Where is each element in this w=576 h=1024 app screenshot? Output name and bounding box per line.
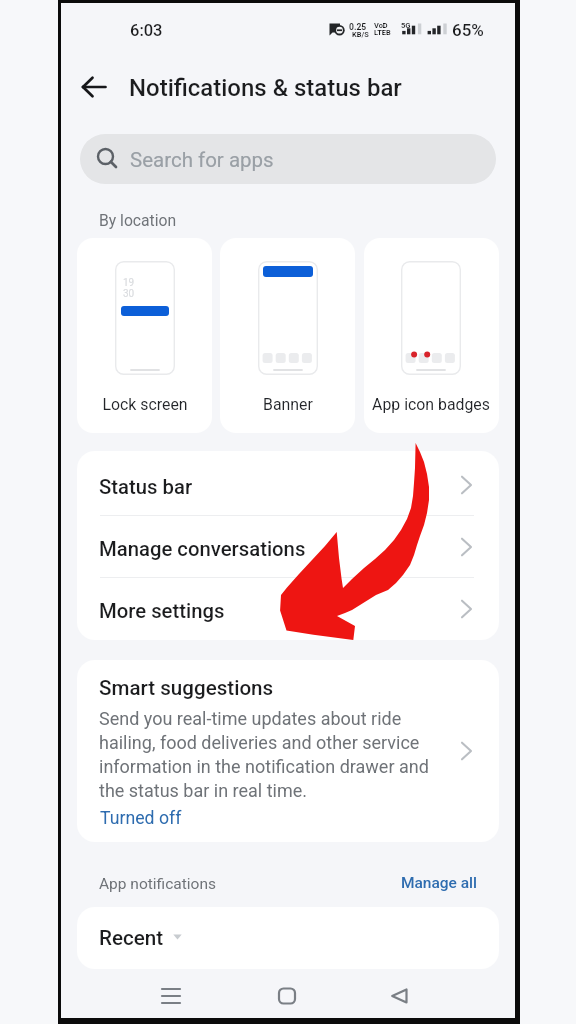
button[interactable] (77, 451, 499, 516)
staticText: By location (99, 211, 177, 229)
button[interactable]: Recent apps (145, 970, 197, 1022)
button[interactable]: Back (374, 970, 426, 1022)
button[interactable] (364, 238, 499, 433)
staticText: 65% (452, 20, 484, 40)
staticText: Turned off (100, 808, 182, 829)
staticText: Banner (263, 395, 313, 414)
button[interactable]: Home (261, 970, 313, 1022)
button[interactable] (77, 516, 499, 579)
button[interactable] (77, 238, 212, 433)
button[interactable]: Back (72, 65, 116, 109)
staticText: Recent (99, 926, 164, 950)
staticText: More settings (99, 599, 225, 623)
staticText: 6:03 (130, 21, 163, 40)
button[interactable] (395, 866, 481, 900)
staticText: 30 (123, 288, 135, 300)
staticText: LTEB (374, 28, 391, 37)
staticText: 5G (401, 21, 411, 30)
button[interactable] (80, 134, 496, 184)
staticText: 19 (123, 277, 135, 289)
staticText: Manage conversations (99, 537, 306, 561)
staticText: Manage all (400, 874, 477, 892)
staticText: Status bar (99, 475, 193, 499)
button[interactable] (77, 578, 499, 640)
staticText: App icon badges (372, 395, 490, 414)
staticText: hailing, food deliveries and other servi… (99, 732, 420, 753)
staticText: Notifications & status bar (129, 74, 402, 102)
staticText: 0.25 (349, 22, 367, 32)
staticText: Search for apps (130, 148, 274, 172)
staticText: information in the notification drawer a… (99, 756, 429, 777)
staticText: App notifications (99, 875, 216, 893)
staticText: the status bar in real time. (99, 780, 308, 801)
staticText: Send you real-time updates about ride (99, 708, 402, 729)
button[interactable] (77, 660, 499, 842)
button[interactable] (77, 907, 499, 969)
staticText: Lock screen (102, 395, 188, 414)
staticText: Smart suggestions (99, 676, 274, 700)
button[interactable] (220, 238, 355, 433)
staticText: KB/S (352, 30, 369, 39)
staticText: VoD (374, 21, 388, 30)
